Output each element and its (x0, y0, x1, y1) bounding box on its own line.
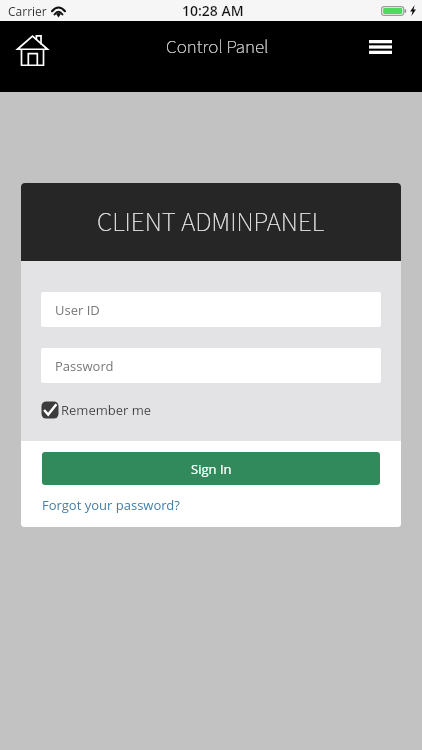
staticText: CLIENT ADMINPANEL (97, 203, 325, 241)
staticText: User ID (55, 301, 100, 319)
button[interactable]: User ID (41, 292, 381, 327)
button[interactable]: Remember me (41, 401, 152, 419)
staticText: 10:28 AM (182, 1, 244, 20)
staticText: Remember me (61, 401, 152, 419)
button[interactable]: Menu (358, 25, 402, 69)
staticText: Control Panel (166, 34, 269, 61)
button[interactable]: Forgot your password? (42, 496, 180, 514)
button[interactable]: Home (2, 26, 63, 87)
button[interactable]: Password (41, 348, 381, 383)
staticText: Sign In (191, 460, 232, 478)
button[interactable]: Sign In (42, 452, 380, 485)
staticText: Password (55, 357, 114, 375)
staticText: Carrier (8, 3, 47, 19)
